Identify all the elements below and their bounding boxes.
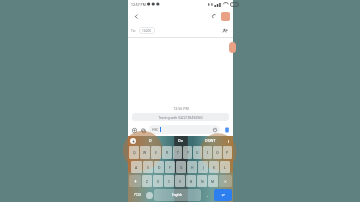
button[interactable]: Do (165, 136, 195, 145)
staticText: Y (187, 150, 189, 155)
staticText: Texting with 0422138494943 (158, 115, 203, 119)
staticText: 12:57 PM (131, 2, 146, 7)
button[interactable]: S (143, 161, 153, 173)
button[interactable]: Q (129, 146, 139, 159)
button[interactable]: Gallery (139, 126, 147, 134)
button[interactable]: HSC (149, 125, 220, 134)
staticText: Do (178, 138, 183, 143)
staticText: F (169, 165, 171, 170)
button[interactable]: Backspace (219, 175, 232, 187)
staticText: . (207, 193, 208, 198)
button[interactable]: H (187, 161, 197, 173)
button[interactable]: J (198, 161, 208, 173)
button[interactable]: Enter (214, 189, 232, 201)
button[interactable]: More options (225, 138, 231, 144)
button[interactable]: X (153, 175, 163, 187)
button[interactable]: Shift (129, 175, 141, 187)
button[interactable]: English (154, 189, 201, 201)
staticText: T (177, 150, 179, 155)
button[interactable]: Attach (130, 126, 138, 134)
staticText: Z (146, 179, 148, 184)
button[interactable]: W (140, 146, 150, 159)
button[interactable]: T (173, 146, 182, 159)
button[interactable]: K (209, 161, 219, 173)
button[interactable]: R (162, 146, 172, 159)
button[interactable]: Texting with 0422138494943 (132, 113, 229, 121)
button[interactable]: E (151, 146, 161, 159)
button[interactable]: C (164, 175, 174, 187)
staticText: X (157, 179, 160, 184)
staticText: To: (131, 28, 136, 33)
staticText: I (207, 150, 209, 155)
button[interactable]: Emoji (146, 192, 153, 199)
staticText: M (211, 179, 215, 184)
staticText: B (190, 179, 193, 184)
staticText: 14200 (142, 29, 152, 33)
button[interactable]: D (154, 161, 164, 173)
button[interactable]: Y (183, 146, 192, 159)
button[interactable]: V (175, 175, 185, 187)
button[interactable]: I (203, 146, 212, 159)
staticText: R (166, 150, 169, 155)
staticText: H (191, 165, 194, 170)
button[interactable]: U (193, 146, 202, 159)
staticText: N (201, 179, 204, 184)
button[interactable]: D (136, 136, 165, 145)
button[interactable]: L (220, 161, 230, 173)
staticText: S (147, 165, 149, 170)
button[interactable]: . (202, 189, 213, 201)
staticText: J (203, 165, 204, 170)
staticText: V (179, 179, 182, 184)
staticText: 12:56 PM (173, 106, 189, 111)
staticText: English (172, 193, 183, 197)
button[interactable]: M (208, 175, 218, 187)
button[interactable]: DONT (195, 136, 225, 145)
staticText: K (213, 165, 216, 170)
button[interactable]: Z (142, 175, 152, 187)
staticText: W (143, 150, 147, 155)
staticText: D (158, 165, 161, 170)
button[interactable]: G (176, 161, 186, 173)
button[interactable]: Contact avatar (221, 12, 230, 21)
button[interactable]: Send (222, 125, 231, 134)
staticText: HSC (152, 127, 159, 132)
button[interactable]: A (131, 161, 142, 173)
button[interactable]: B (186, 175, 196, 187)
button[interactable]: F (165, 161, 175, 173)
staticText: O (216, 150, 219, 155)
button[interactable]: Voice input (130, 138, 136, 144)
button[interactable]: Back (131, 11, 142, 22)
staticText: L (224, 165, 226, 170)
staticText: P (226, 150, 229, 155)
staticText: DONT (205, 138, 216, 143)
staticText: U (196, 150, 199, 155)
button[interactable]: N (197, 175, 207, 187)
button[interactable]: O (213, 146, 222, 159)
staticText: D (149, 138, 152, 143)
staticText: G (180, 165, 183, 170)
staticText: C (168, 179, 171, 184)
staticText: Q (133, 150, 136, 155)
button[interactable]: Call (209, 11, 220, 22)
button[interactable]: ?123 (129, 189, 145, 201)
button[interactable]: 14200 (139, 27, 155, 34)
staticText: A (135, 165, 138, 170)
button[interactable]: Add recipient (220, 26, 230, 36)
staticText: E (155, 150, 157, 155)
staticText: ?123 (134, 193, 141, 197)
button[interactable]: P (223, 146, 232, 159)
